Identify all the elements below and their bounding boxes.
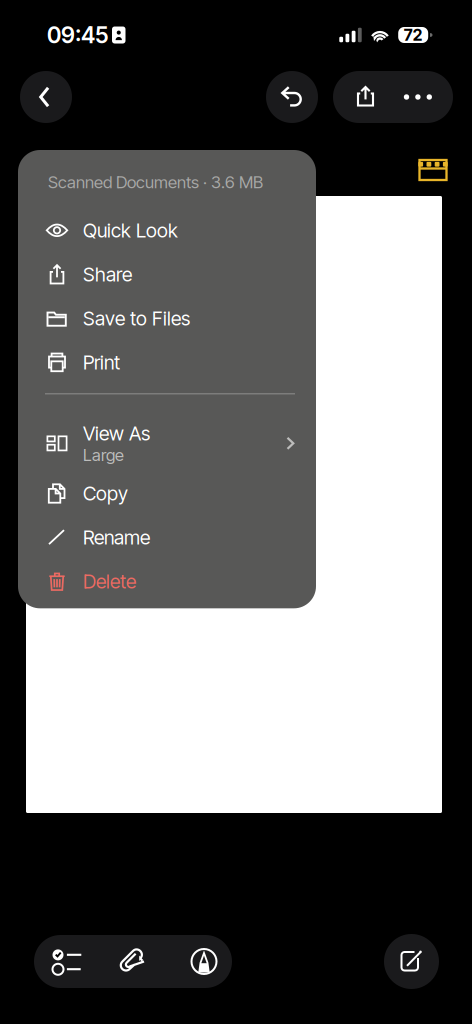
staticText: Large [83, 445, 124, 465]
staticText: Print [83, 351, 120, 374]
button[interactable]: View As [18, 415, 316, 471]
button[interactable]: Print [18, 340, 316, 384]
button[interactable]: Save to Files [18, 296, 316, 340]
staticText: Save to Files [83, 307, 190, 330]
button[interactable]: Rename [18, 515, 316, 559]
button[interactable]: Share [18, 252, 316, 296]
staticText: Share [83, 263, 132, 286]
button[interactable]: Copy [18, 471, 316, 515]
staticText: 09:45 [47, 21, 108, 49]
button[interactable]: Attach [100, 935, 166, 988]
button[interactable]: Undo [266, 71, 318, 123]
button[interactable]: Quick Look [18, 208, 316, 252]
button[interactable]: Checklist [34, 935, 100, 988]
button[interactable]: Back [20, 71, 72, 123]
staticText: 72 [404, 25, 423, 45]
staticText: Scanned Documents · 3.6 MB [48, 172, 263, 192]
button[interactable]: Share and more [333, 71, 453, 123]
staticText: Copy [83, 482, 128, 505]
button[interactable]: Markup [166, 935, 232, 988]
staticText: Rename [83, 526, 150, 549]
staticText: Delete [83, 570, 136, 593]
staticText: Quick Look [83, 219, 178, 242]
button[interactable]: Delete [18, 559, 316, 603]
button[interactable]: Compose [384, 934, 439, 989]
staticText: View As [83, 421, 150, 445]
button[interactable]: Page thumbnails [411, 150, 455, 190]
